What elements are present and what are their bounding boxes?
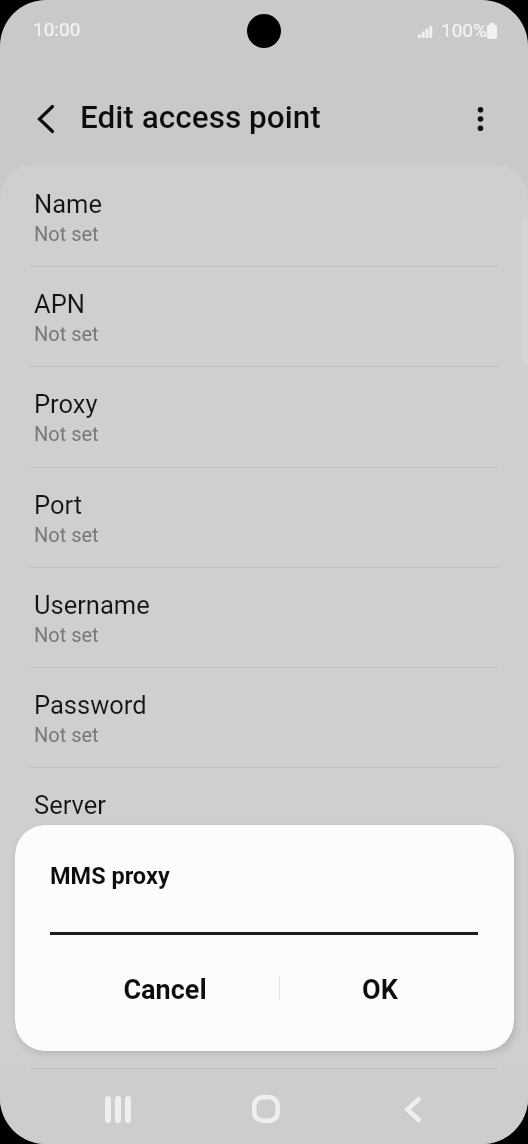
button[interactable]: MMS port xyxy=(0,968,528,1068)
staticText: 100% xyxy=(441,19,487,41)
staticText: Not set xyxy=(34,222,99,245)
button[interactable]: Navigate up xyxy=(20,81,70,145)
staticText: APN xyxy=(34,289,85,319)
staticText: Not set xyxy=(34,623,99,646)
staticText: Not set xyxy=(34,422,99,445)
button[interactable]: APN xyxy=(0,266,528,366)
button[interactable]: Home xyxy=(225,1069,305,1144)
button[interactable]: Password xyxy=(0,667,528,767)
button[interactable]: Server xyxy=(0,767,528,867)
staticText: Server xyxy=(34,790,106,820)
staticText: Not set xyxy=(34,723,99,746)
staticText: Edit access point xyxy=(80,99,321,136)
button[interactable]: Recent apps xyxy=(78,1069,158,1144)
staticText: Not set xyxy=(34,823,99,846)
button[interactable]: More options xyxy=(456,87,504,139)
button[interactable]: Port xyxy=(0,467,528,567)
staticText: OK xyxy=(362,974,398,1006)
staticText: Port xyxy=(34,490,83,520)
staticText: 10:00 xyxy=(33,18,81,40)
staticText: Not set xyxy=(34,924,99,947)
staticText: Name xyxy=(34,189,102,219)
button[interactable]: MMS proxy xyxy=(0,868,528,968)
staticText: Username xyxy=(34,590,150,620)
staticText: MMS port xyxy=(34,991,147,1021)
staticText: Not set xyxy=(34,523,99,546)
button[interactable]: Username xyxy=(0,567,528,667)
button[interactable]: OK xyxy=(275,957,485,1022)
staticText: MMS proxy xyxy=(50,862,170,890)
button[interactable]: Name xyxy=(0,166,528,266)
staticText: Proxy xyxy=(34,389,98,419)
button[interactable]: Back xyxy=(373,1069,453,1144)
staticText: Not set xyxy=(34,322,99,345)
staticText: Cancel xyxy=(123,974,207,1006)
staticText: Password xyxy=(34,690,147,720)
button[interactable]: Proxy xyxy=(0,366,528,466)
button[interactable]: Cancel xyxy=(60,957,270,1022)
